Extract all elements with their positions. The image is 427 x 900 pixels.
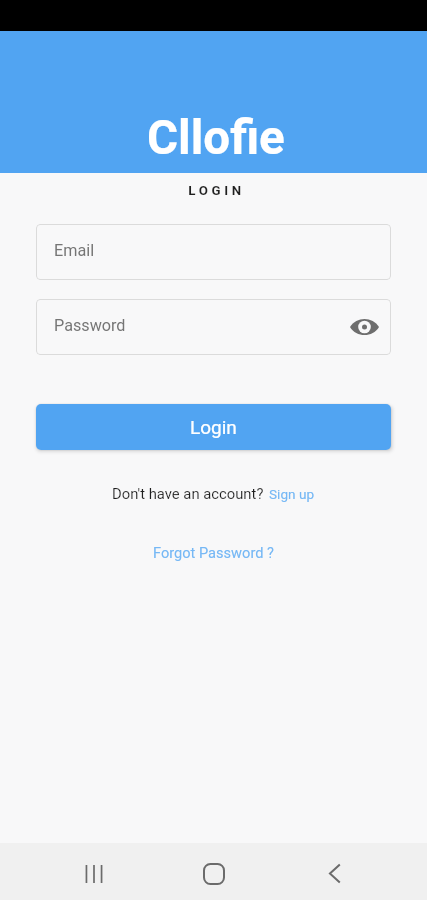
- staticText: LOGIN: [6, 183, 427, 199]
- staticText: Don't have an account?: [112, 485, 264, 502]
- staticText: Email: [54, 241, 95, 260]
- staticText: Sign up: [269, 486, 315, 502]
- button[interactable]: Login: [36, 404, 391, 450]
- button[interactable]: Sign up: [269, 486, 315, 502]
- button[interactable]: Home: [154, 847, 274, 900]
- staticText: Password: [54, 316, 126, 335]
- button[interactable]: Password: [36, 299, 391, 355]
- button[interactable]: Forgot Password ?: [153, 544, 274, 561]
- staticText: Cllofie: [147, 110, 285, 166]
- staticText: Forgot Password ?: [153, 544, 274, 561]
- button[interactable]: Email: [36, 224, 391, 280]
- button[interactable]: Back: [274, 847, 394, 900]
- staticText: Login: [190, 416, 237, 438]
- button[interactable]: Recent apps: [34, 847, 154, 900]
- button[interactable]: Show password: [345, 308, 383, 346]
